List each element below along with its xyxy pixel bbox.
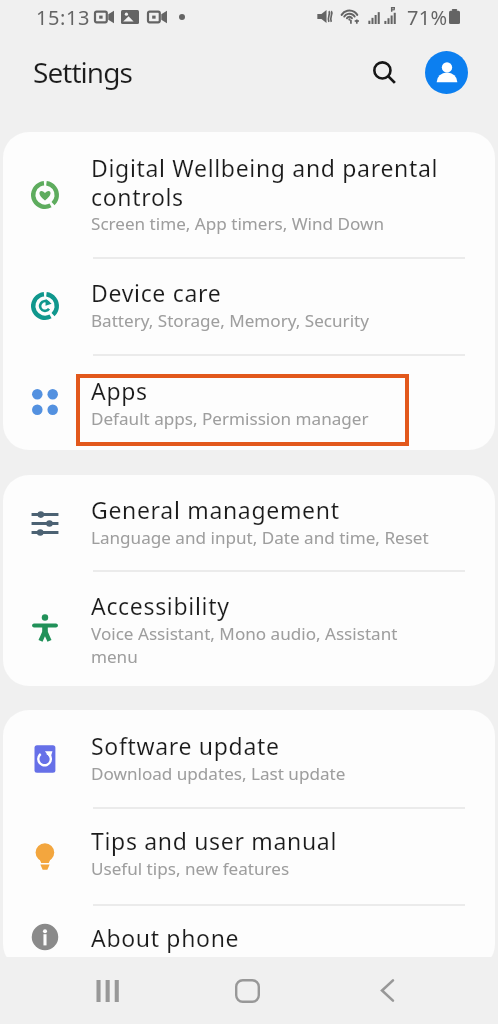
staticText: Digital Wellbeing and parental controls: [91, 152, 439, 213]
staticText: Status, Legal information, Phone name: [91, 954, 404, 970]
button[interactable]: Apps: [3, 354, 495, 450]
button[interactable]: Digital Wellbeing and parental controls: [3, 132, 495, 257]
button[interactable]: Tips and user manual: [3, 807, 495, 904]
staticText: About phone: [91, 922, 240, 953]
staticText: Download updates, Last update: [91, 762, 346, 785]
button[interactable]: About phone: [3, 904, 495, 970]
staticText: Tips and user manual: [91, 825, 338, 856]
button[interactable]: General management: [3, 475, 495, 570]
staticText: Voice Assistant, Mono audio, Assistant m…: [91, 622, 398, 668]
button[interactable]: Accessibility: [3, 570, 495, 686]
button[interactable]: Device care: [3, 257, 495, 354]
staticText: 15:13: [36, 4, 91, 31]
staticText: Useful tips, new features: [91, 857, 290, 880]
staticText: General management: [91, 494, 340, 525]
staticText: Settings: [33, 53, 132, 91]
button[interactable]: Software update: [3, 710, 495, 807]
button[interactable]: Back: [347, 957, 427, 1024]
staticText: Accessibility: [91, 590, 230, 621]
staticText: Battery, Storage, Memory, Security: [91, 309, 369, 332]
staticText: Screen time, App timers, Wind Down: [91, 212, 385, 235]
button[interactable]: Recents: [68, 957, 148, 1024]
staticText: 71%: [407, 4, 448, 31]
button[interactable]: Home: [207, 957, 287, 1024]
staticText: Default apps, Permission manager: [91, 407, 369, 430]
button[interactable]: Account: [425, 51, 468, 94]
button[interactable]: Search: [362, 50, 408, 96]
staticText: Software update: [91, 730, 280, 761]
staticText: Language and input, Date and time, Reset: [91, 526, 429, 549]
staticText: Apps: [91, 375, 148, 406]
staticText: Device care: [91, 277, 222, 308]
